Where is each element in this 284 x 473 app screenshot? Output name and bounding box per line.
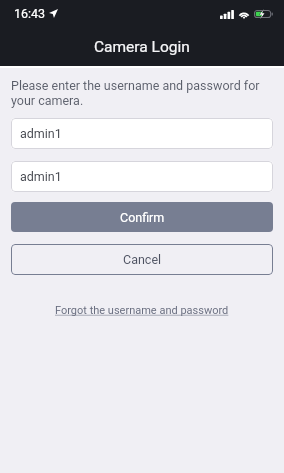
button[interactable]: admin1: [11, 118, 273, 149]
button[interactable]: Forgot the username and password: [49, 301, 235, 320]
button[interactable]: Confirm: [11, 202, 273, 232]
staticText: Please enter the username and password f…: [11, 78, 273, 108]
other: Cellular signal: [220, 10, 234, 19]
staticText: Cancel: [123, 252, 162, 267]
button[interactable]: admin1: [11, 161, 273, 192]
staticText: admin1: [20, 126, 62, 141]
staticText: Camera Login: [94, 38, 190, 56]
staticText: 16:43: [14, 6, 46, 21]
button[interactable]: Cancel: [11, 244, 273, 275]
other: Battery charging: [254, 9, 274, 19]
staticText: admin1: [20, 169, 62, 184]
staticText: Confirm: [120, 210, 165, 225]
other: Location: [49, 9, 58, 18]
other: Wi-Fi: [238, 10, 250, 19]
